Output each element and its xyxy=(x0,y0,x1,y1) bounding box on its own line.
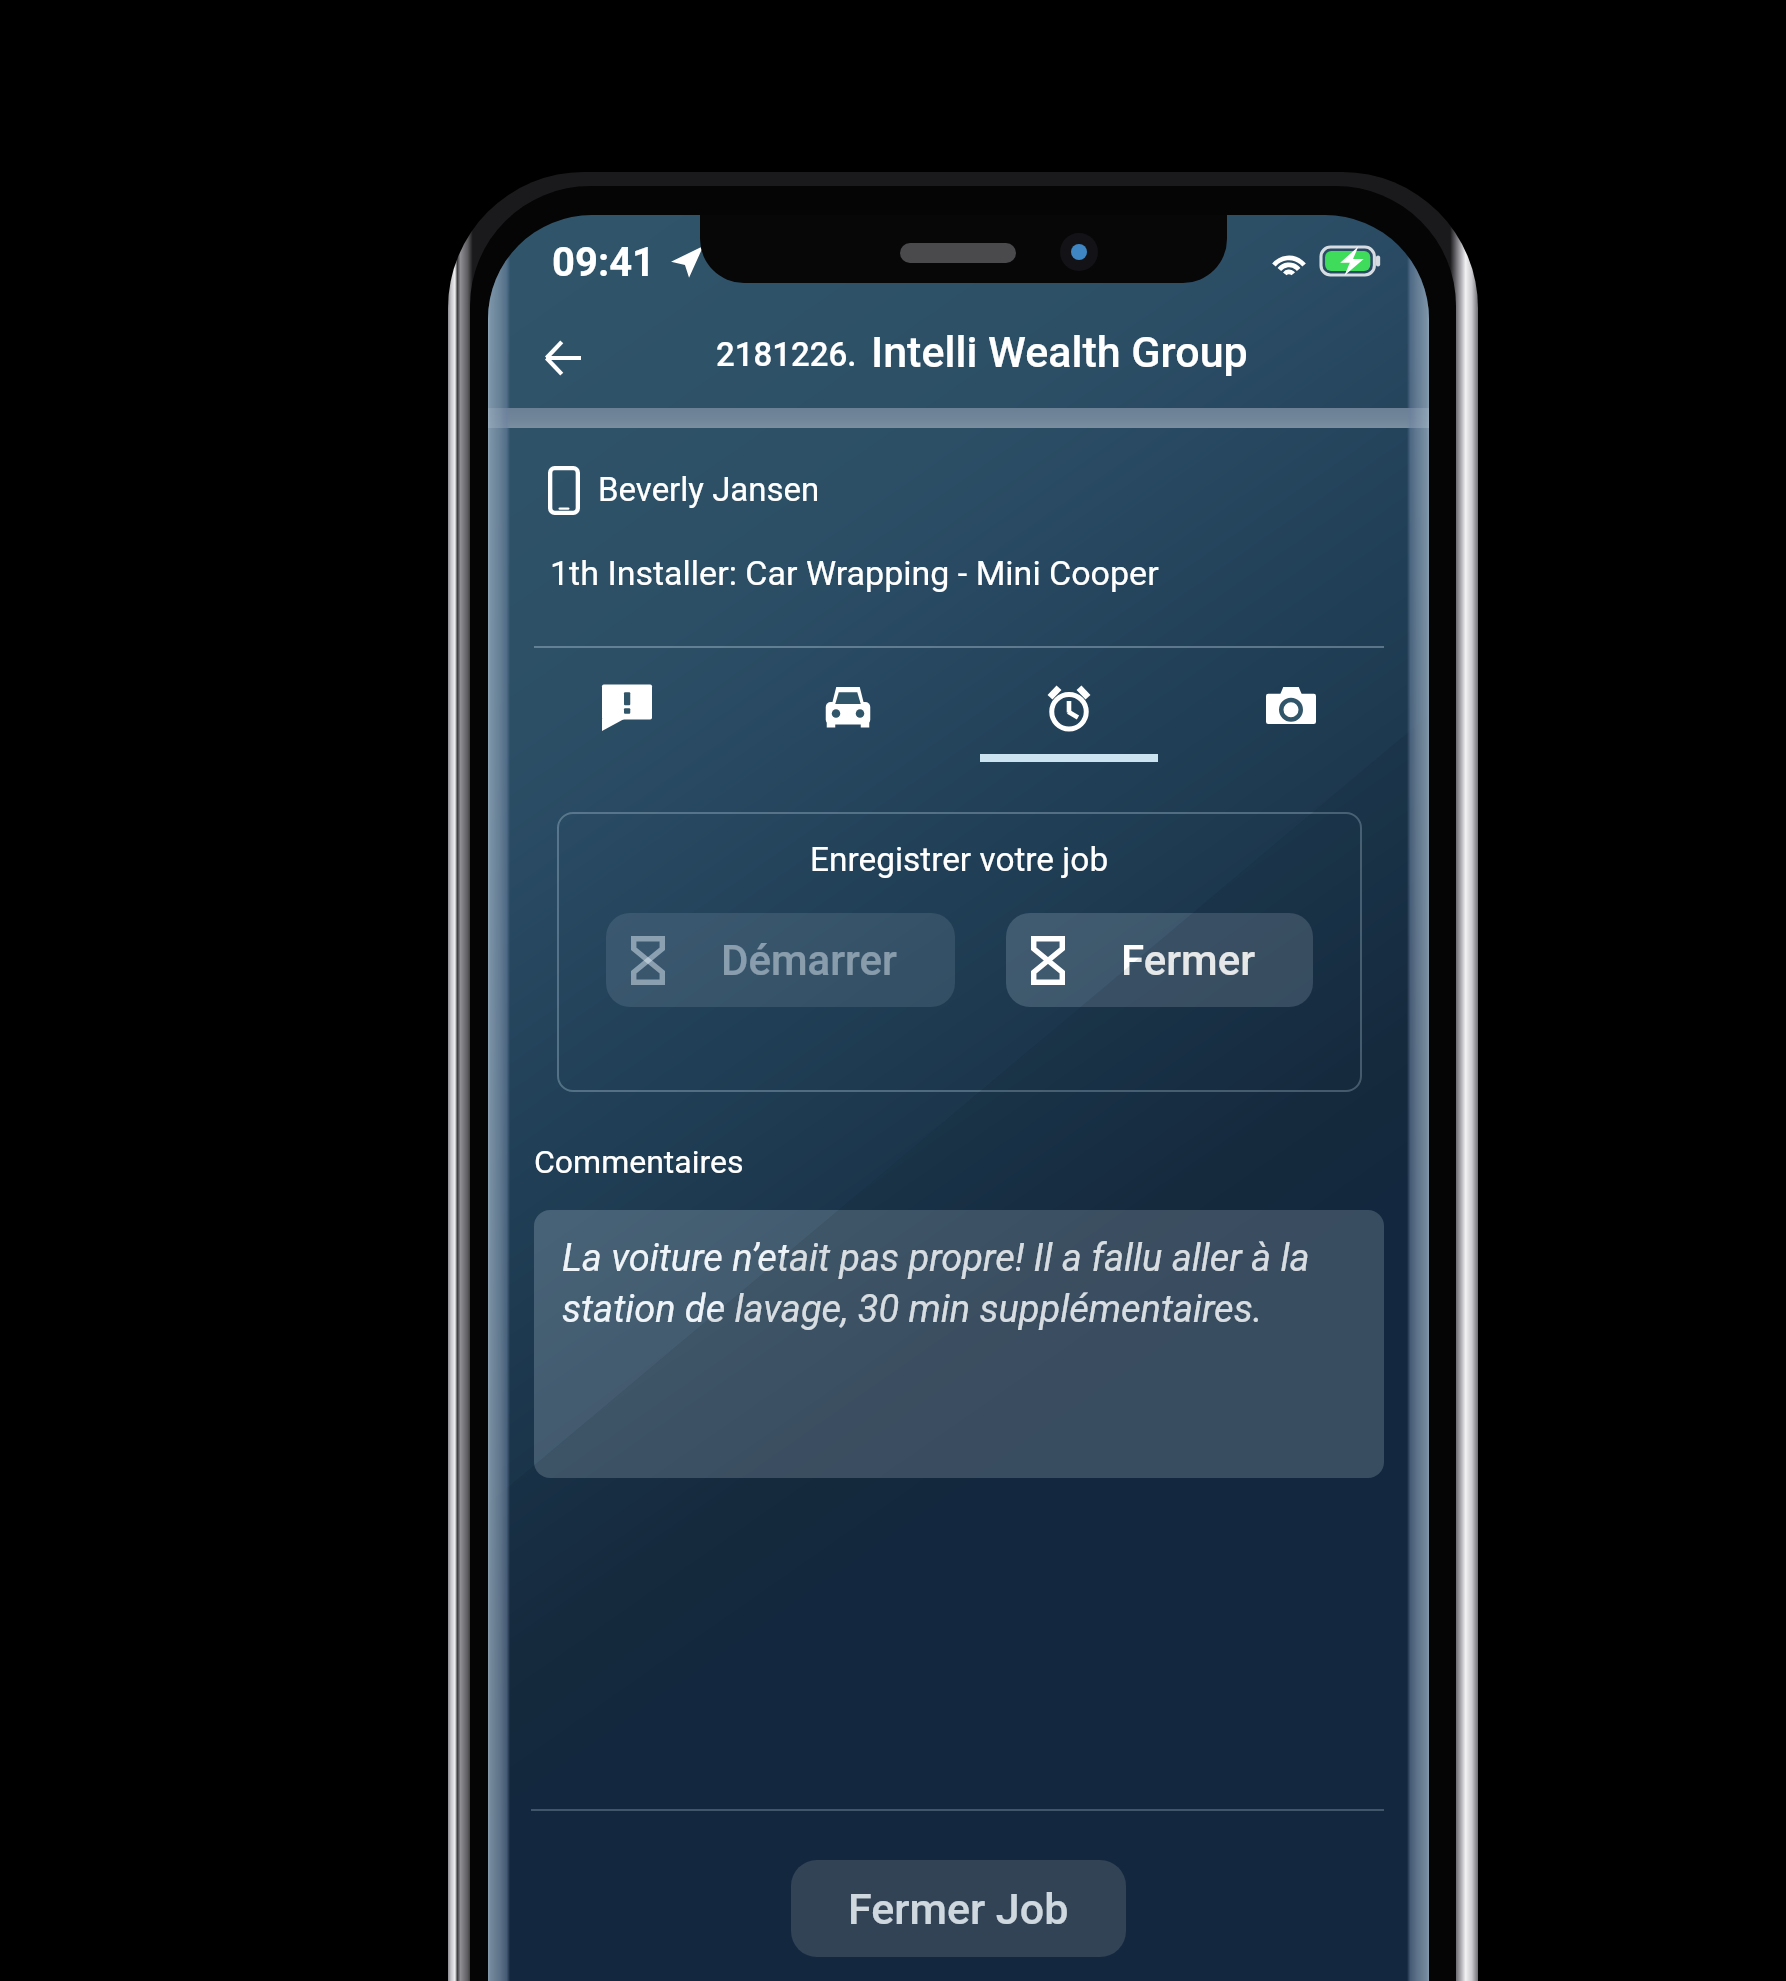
button[interactable]: Photos xyxy=(1181,652,1401,808)
staticText: La voiture n’etait pas propre! Il a fall… xyxy=(562,1236,1370,1331)
staticText: Commentaires xyxy=(534,1143,744,1181)
staticText: Intelli Wealth Group xyxy=(871,327,1248,377)
button[interactable]: Fermer Job xyxy=(791,1860,1126,1957)
staticText: Beverly Jansen xyxy=(598,470,820,509)
button[interactable]: Fermer xyxy=(1006,913,1313,1007)
staticText: Fermer xyxy=(1121,936,1255,985)
staticText: 1th Installer: Car Wrapping - Mini Coope… xyxy=(550,553,1159,593)
button[interactable]: Back xyxy=(516,312,608,404)
staticText: Démarrer xyxy=(721,936,897,985)
staticText: Fermer Job xyxy=(848,1884,1069,1934)
button[interactable]: Démarrer xyxy=(606,913,955,1007)
button[interactable]: La voiture n’etait pas propre! Il a fall… xyxy=(534,1210,1384,1478)
button[interactable]: Messages xyxy=(517,652,737,808)
button[interactable]: Time tracking xyxy=(959,652,1179,808)
staticText: Enregistrer votre job xyxy=(810,840,1109,879)
button[interactable]: Vehicle xyxy=(738,652,958,808)
staticText: 2181226. xyxy=(716,335,857,374)
staticText: 09:41 xyxy=(552,239,656,286)
